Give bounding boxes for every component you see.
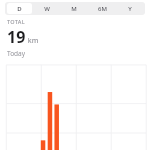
staticText: TOTAL <box>7 18 25 25</box>
button[interactable]: W <box>34 3 59 14</box>
button[interactable]: D <box>7 3 32 14</box>
staticText: 6M <box>98 5 107 13</box>
staticText: Today <box>7 49 26 58</box>
staticText: W <box>44 5 50 13</box>
staticText: Y <box>128 5 132 13</box>
other: Distance bar chart <box>0 58 150 150</box>
button[interactable]: M <box>61 3 87 14</box>
staticText: 19 <box>7 26 26 48</box>
staticText: km <box>26 36 39 46</box>
staticText: M <box>71 5 77 13</box>
button[interactable]: Y <box>117 3 143 14</box>
button[interactable]: 6M <box>89 3 115 14</box>
staticText: D <box>17 5 22 13</box>
